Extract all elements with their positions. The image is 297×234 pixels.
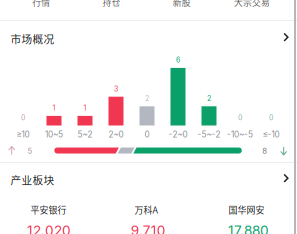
staticText: 2 <box>207 94 211 103</box>
staticText: 0 <box>269 113 273 122</box>
staticText: 新股 <box>173 0 191 8</box>
staticText: 平安银行 <box>30 203 66 216</box>
staticText: 12.020 <box>27 222 71 234</box>
staticText: 1 <box>83 104 86 112</box>
staticText: 2 <box>145 94 149 103</box>
button[interactable]: 产业板块 <box>0 172 293 186</box>
staticText: 17.880 <box>228 222 269 234</box>
button[interactable]: 市场概况 <box>0 31 293 45</box>
staticText: 国华网安 <box>228 203 264 216</box>
staticText: 市场概况 <box>10 31 54 46</box>
button[interactable]: 万科A <box>99 203 193 234</box>
staticText: 3 <box>114 85 118 93</box>
button[interactable]: 国华网安 <box>199 203 293 234</box>
staticText: -10~-5 <box>227 129 253 139</box>
staticText: -2~0 <box>168 129 187 139</box>
button[interactable]: 行情 <box>6 0 76 9</box>
button[interactable]: 大宗交易 <box>217 0 287 9</box>
button[interactable]: 平安银行 <box>1 203 95 234</box>
staticText: 持仓 <box>102 0 120 8</box>
staticText: 产业板块 <box>10 172 54 187</box>
staticText: 9.710 <box>131 222 166 234</box>
staticText: -5~-2 <box>197 129 220 139</box>
staticText: 5 <box>27 146 32 156</box>
staticText: 万科A <box>134 203 157 216</box>
staticText: ≤-10 <box>262 129 279 139</box>
staticText: 2~0 <box>108 129 123 139</box>
staticText: 6 <box>176 56 180 64</box>
staticText: 大宗交易 <box>234 0 270 8</box>
staticText: 10~5 <box>45 129 63 139</box>
button[interactable]: 新股 <box>146 0 217 9</box>
staticText: 8 <box>262 146 267 156</box>
staticText: 1 <box>52 104 55 112</box>
staticText: ≥10 <box>16 129 29 139</box>
button[interactable]: 持仓 <box>76 0 146 9</box>
staticText: 0 <box>238 113 242 122</box>
staticText: 0 <box>144 129 149 139</box>
staticText: 行情 <box>32 0 50 8</box>
staticText: 0 <box>21 113 25 122</box>
staticText: 5~2 <box>77 129 92 139</box>
